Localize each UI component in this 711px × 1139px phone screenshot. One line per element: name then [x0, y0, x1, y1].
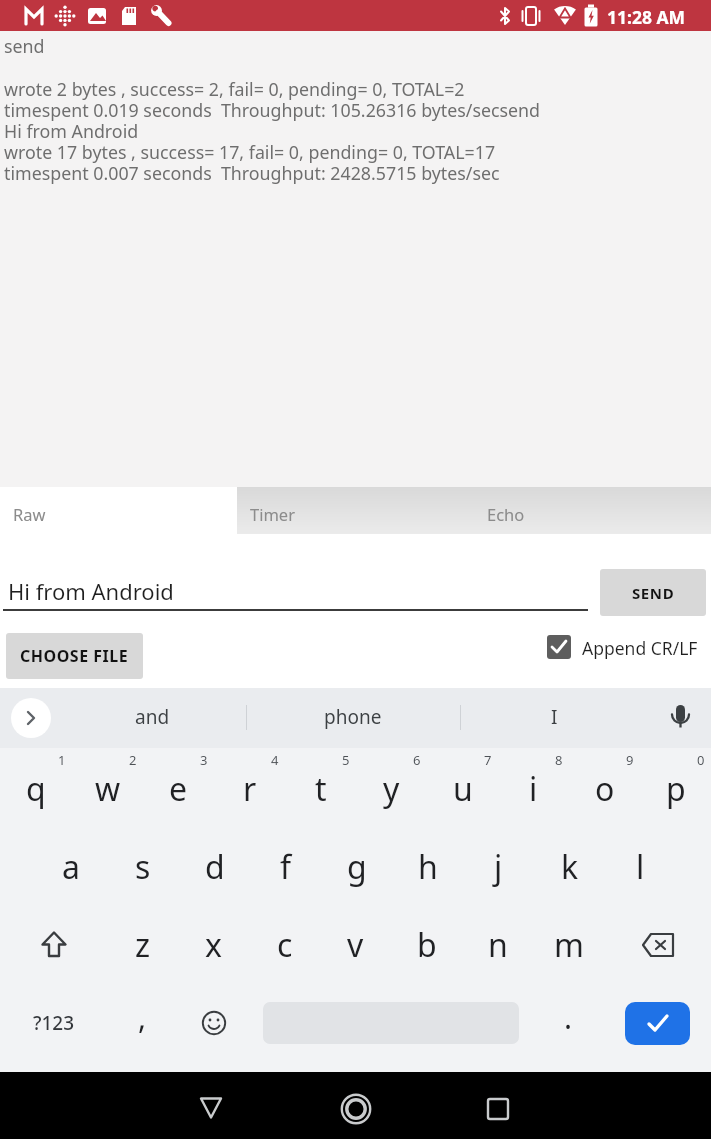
staticText: I	[551, 704, 558, 730]
staticText: 6	[413, 751, 421, 769]
button[interactable]	[0, 906, 107, 984]
button[interactable]	[11, 698, 51, 738]
button[interactable]: c	[249, 906, 320, 984]
staticText: SEND	[632, 583, 675, 603]
button[interactable]: l	[605, 828, 676, 906]
staticText: v	[347, 923, 364, 967]
button[interactable]	[604, 906, 711, 984]
button[interactable]: t	[285, 750, 356, 828]
staticText: u	[453, 767, 473, 811]
staticText: Hi from Android	[8, 576, 174, 606]
button[interactable]: o	[569, 750, 640, 828]
button[interactable]: y	[356, 750, 427, 828]
button[interactable]: a	[35, 828, 107, 906]
staticText: .	[564, 997, 573, 1038]
staticText: n	[488, 923, 508, 967]
staticText: s	[135, 845, 151, 889]
staticText: r	[243, 767, 257, 811]
button[interactable]: g	[321, 828, 392, 906]
button[interactable]: w	[72, 750, 143, 828]
button[interactable]: f	[250, 828, 321, 906]
button[interactable]: j	[463, 828, 534, 906]
button[interactable]	[305, 1072, 405, 1139]
staticText: 7	[484, 751, 492, 769]
button[interactable]: Echo	[474, 487, 711, 534]
button[interactable]: CHOOSE FILE	[6, 633, 143, 679]
button[interactable]: r	[214, 750, 285, 828]
staticText: ,	[138, 997, 147, 1038]
staticText: b	[417, 923, 437, 967]
staticText: d	[205, 845, 225, 889]
staticText: phone	[324, 704, 382, 730]
button[interactable]	[178, 984, 249, 1062]
staticText: f	[280, 845, 292, 889]
staticText: c	[277, 923, 293, 967]
button[interactable]: phone	[293, 688, 413, 746]
staticText: 8	[555, 751, 563, 769]
staticText: Echo	[487, 503, 525, 525]
button[interactable]: v	[320, 906, 391, 984]
staticText: m	[554, 923, 584, 967]
button[interactable]: I	[494, 688, 614, 746]
button[interactable]: x	[178, 906, 249, 984]
staticText: y	[383, 767, 400, 811]
staticText: ?123	[33, 1010, 75, 1036]
staticText: send wrote 2 bytes , success= 2, fail= 0…	[4, 34, 541, 185]
button[interactable]: i	[498, 750, 569, 828]
staticText: CHOOSE FILE	[20, 645, 129, 667]
button[interactable]	[663, 698, 699, 738]
button[interactable]	[450, 1072, 550, 1139]
staticText: i	[529, 767, 538, 811]
button[interactable]: and	[92, 688, 212, 746]
staticText: 5	[342, 751, 350, 769]
button[interactable]: Raw	[0, 487, 237, 534]
staticText: 9	[626, 751, 634, 769]
staticText: o	[595, 767, 615, 811]
staticText: z	[135, 923, 151, 967]
button[interactable]	[625, 1002, 690, 1045]
button[interactable]: h	[392, 828, 463, 906]
button[interactable]: b	[391, 906, 462, 984]
button[interactable]: p	[640, 750, 711, 828]
button[interactable]: n	[462, 906, 533, 984]
staticText: 2	[129, 751, 137, 769]
staticText: e	[169, 767, 188, 811]
staticText: and	[135, 704, 170, 730]
button[interactable]	[604, 984, 711, 1062]
button[interactable]: ?123	[0, 984, 107, 1062]
button[interactable]: SEND	[600, 569, 706, 616]
staticText: p	[666, 767, 686, 811]
button[interactable]: Timer	[237, 487, 474, 534]
staticText: q	[26, 767, 46, 811]
button[interactable]	[547, 635, 571, 659]
staticText: 4	[271, 751, 279, 769]
button[interactable]: .	[533, 984, 604, 1062]
staticText: 0	[697, 751, 705, 769]
staticText: g	[347, 845, 367, 889]
staticText: t	[315, 767, 327, 811]
button[interactable]	[249, 984, 533, 1062]
button[interactable]: q	[0, 750, 72, 828]
staticText: j	[494, 845, 503, 889]
button[interactable]: z	[107, 906, 178, 984]
staticText: a	[62, 845, 80, 889]
button[interactable]: u	[427, 750, 498, 828]
staticText: Append CR/LF	[582, 636, 698, 660]
staticText: h	[418, 845, 438, 889]
staticText: l	[636, 845, 645, 889]
button[interactable]: e	[143, 750, 214, 828]
staticText: 3	[200, 751, 208, 769]
staticText: x	[205, 923, 222, 967]
button[interactable]	[160, 1072, 260, 1139]
button[interactable]: d	[179, 828, 250, 906]
staticText: k	[561, 845, 579, 889]
staticText: Timer	[250, 503, 295, 525]
staticText: 11:28 AM	[607, 5, 686, 29]
button[interactable]: s	[107, 828, 179, 906]
button[interactable]: ,	[107, 984, 178, 1062]
staticText: 1	[58, 751, 66, 769]
staticText: Raw	[13, 503, 46, 525]
button[interactable]: m	[533, 906, 604, 984]
staticText: w	[95, 767, 121, 811]
button[interactable]: k	[534, 828, 605, 906]
